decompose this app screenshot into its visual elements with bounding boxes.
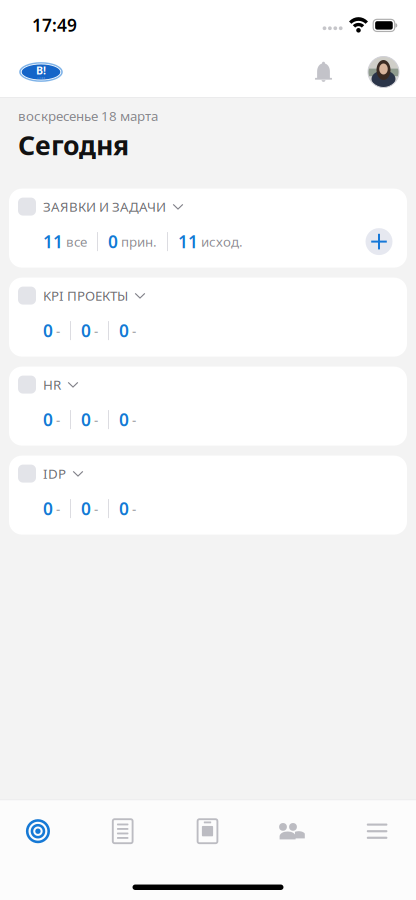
button[interactable]: Add request (357, 220, 401, 264)
staticText: - (56, 500, 60, 517)
staticText: ЗАЯВКИ И ЗАДАЧИ (43, 198, 166, 215)
staticText: исход. (201, 233, 243, 250)
staticText: Сегодня (18, 127, 129, 163)
staticText: 0 (119, 319, 129, 342)
staticText: IDP (43, 465, 66, 482)
staticText: - (132, 500, 136, 517)
button[interactable]: HR (9, 367, 407, 446)
button[interactable]: Profile (368, 50, 399, 94)
staticText: - (94, 411, 98, 428)
staticText: - (94, 500, 98, 517)
button[interactable]: Notifications (303, 50, 343, 94)
staticText: 0 (81, 319, 91, 342)
staticText: HR (43, 376, 61, 393)
staticText: 11 (178, 230, 198, 253)
button[interactable]: Home (0, 800, 80, 862)
staticText: все (66, 233, 87, 250)
button[interactable]: B! Life (19, 50, 65, 94)
staticText: 11 (43, 230, 63, 253)
staticText: - (132, 411, 136, 428)
staticText: L I F E (37, 78, 44, 81)
button[interactable]: Colleagues (250, 800, 335, 862)
staticText: B! (36, 63, 46, 78)
button[interactable]: KPI ПРОЕКТЫ (9, 278, 407, 357)
staticText: 0 (43, 497, 53, 520)
button[interactable]: News (165, 800, 250, 862)
staticText: 0 (43, 319, 53, 342)
button[interactable]: Tasks (80, 800, 165, 862)
staticText: - (56, 322, 60, 339)
staticText: KPI ПРОЕКТЫ (43, 287, 128, 304)
staticText: - (132, 322, 136, 339)
button[interactable]: ЗАЯВКИ И ЗАДАЧИ (9, 189, 407, 268)
staticText: 17:49 (32, 13, 77, 36)
staticText: 0 (108, 230, 118, 253)
staticText: 0 (43, 408, 53, 431)
staticText: 0 (81, 497, 91, 520)
staticText: 0 (119, 408, 129, 431)
staticText: воскресенье 18 марта (18, 107, 158, 125)
staticText: - (94, 322, 98, 339)
button[interactable]: Menu (335, 800, 416, 862)
staticText: 0 (81, 408, 91, 431)
staticText: прин. (121, 233, 157, 250)
button[interactable]: IDP (9, 456, 407, 535)
staticText: 0 (119, 497, 129, 520)
staticText: - (56, 411, 60, 428)
